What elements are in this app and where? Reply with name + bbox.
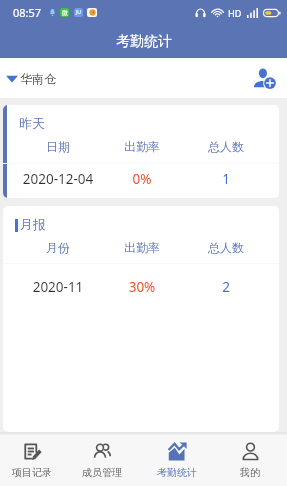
button[interactable]: 华南仓: [0, 63, 64, 94]
staticText: 项目记录: [12, 466, 52, 479]
staticText: 考勤统计: [116, 33, 172, 51]
staticText: 月份: [16, 240, 100, 255]
button[interactable]: 项目记录: [0, 435, 68, 486]
staticText: JU: [76, 9, 82, 16]
button[interactable]: 成员管理: [66, 435, 138, 486]
button[interactable]: 我的: [214, 435, 286, 486]
staticText: 0%: [100, 170, 184, 188]
staticText: 总人数: [184, 139, 268, 154]
staticText: 华南仓: [20, 71, 56, 86]
button[interactable]: 考勤统计: [141, 435, 213, 486]
staticText: 成员管理: [82, 466, 122, 479]
staticText: 2020-11: [16, 278, 100, 296]
button[interactable]: 昨天: [3, 105, 279, 198]
staticText: 月报: [20, 216, 46, 232]
staticText: 微: [62, 9, 68, 17]
staticText: 30%: [100, 278, 184, 296]
staticText: 2020-12-04: [16, 170, 100, 188]
staticText: 总人数: [184, 240, 268, 255]
staticText: 2: [184, 278, 268, 296]
staticText: 出勤率: [100, 139, 184, 154]
staticText: 1: [184, 170, 268, 188]
button[interactable]: Add member: [252, 66, 276, 90]
staticText: 08:57: [13, 5, 42, 20]
button[interactable]: 月报: [3, 206, 279, 432]
staticText: 昨天: [19, 115, 45, 131]
staticText: HD: [228, 7, 242, 19]
staticText: 我的: [240, 466, 260, 479]
staticText: 出勤率: [100, 240, 184, 255]
staticText: 日期: [16, 139, 100, 154]
staticText: 考勤统计: [157, 466, 197, 479]
